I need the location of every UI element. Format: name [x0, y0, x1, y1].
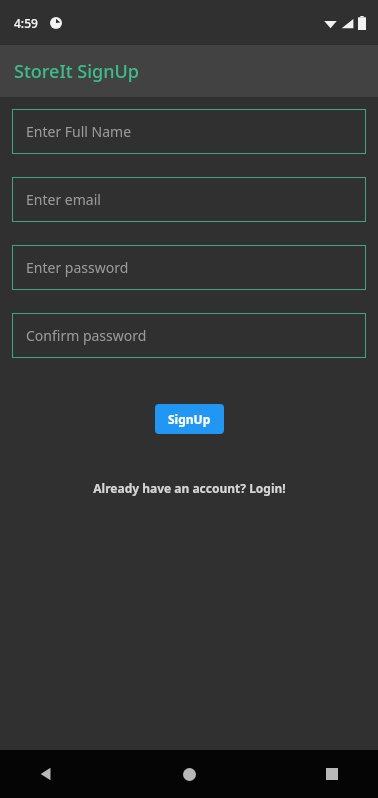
button[interactable]: Enter Full Name [12, 109, 366, 154]
button[interactable]: Recent apps [304, 750, 360, 798]
button[interactable]: Enter email [12, 177, 366, 222]
staticText: Confirm password [26, 326, 147, 345]
button[interactable]: SignUp [155, 404, 224, 434]
button[interactable]: Home [161, 750, 217, 798]
staticText: StoreIt SignUp [14, 59, 139, 84]
button[interactable]: Enter password [12, 245, 366, 290]
button[interactable]: Already have an account? Login! [85, 476, 294, 500]
staticText: SignUp [168, 411, 211, 427]
staticText: Enter email [26, 190, 101, 209]
button[interactable]: Back [18, 750, 74, 798]
staticText: Enter Full Name [26, 122, 132, 141]
staticText: Enter password [26, 258, 129, 277]
staticText: Already have an account? Login! [93, 480, 286, 496]
button[interactable]: Confirm password [12, 313, 366, 358]
staticText: 4:59 [14, 15, 38, 31]
